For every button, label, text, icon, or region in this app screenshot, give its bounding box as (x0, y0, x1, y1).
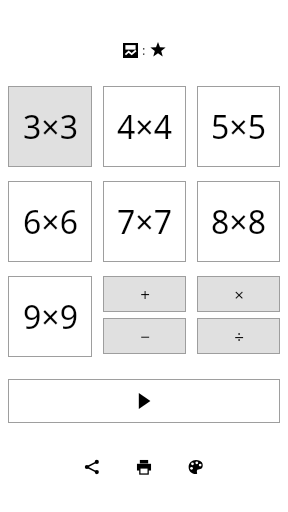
button[interactable]: Start game (8, 379, 280, 423)
button[interactable]: 8×8 (197, 181, 280, 262)
button[interactable]: Statistics and high score (123, 41, 166, 59)
staticText: × (234, 283, 244, 306)
button[interactable]: Share (74, 449, 110, 485)
staticText: 5×5 (211, 105, 266, 149)
staticText: 7×7 (117, 200, 172, 244)
button[interactable]: ÷ (197, 318, 280, 354)
staticText: : (142, 41, 146, 59)
staticText: 4×4 (117, 105, 172, 149)
button[interactable]: 4×4 (103, 86, 186, 167)
button[interactable]: Theme colors (178, 449, 214, 485)
button[interactable]: 7×7 (103, 181, 186, 262)
staticText: 8×8 (211, 200, 266, 244)
button[interactable]: 5×5 (197, 86, 280, 167)
staticText: 3×3 (23, 105, 78, 149)
button[interactable]: − (103, 318, 186, 354)
staticText: ÷ (234, 325, 244, 348)
button[interactable]: × (197, 276, 280, 312)
button[interactable]: + (103, 276, 186, 312)
button[interactable]: 9×9 (8, 276, 92, 357)
button[interactable]: 3×3 (8, 86, 92, 167)
button[interactable]: 6×6 (8, 181, 92, 262)
staticText: 9×9 (23, 295, 78, 339)
staticText: 6×6 (23, 200, 78, 244)
staticText: − (140, 325, 150, 348)
staticText: + (140, 283, 150, 306)
button[interactable]: Print (126, 449, 162, 485)
